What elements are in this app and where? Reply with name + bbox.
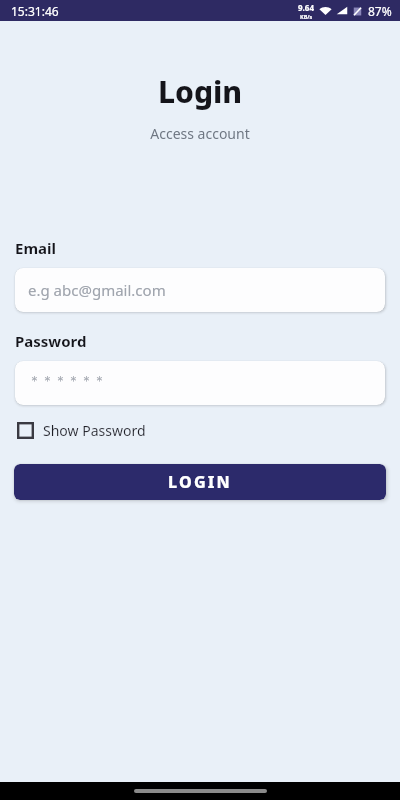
staticText: e.g abc@gmail.com	[28, 280, 166, 300]
button[interactable]: ＊＊＊＊＊＊	[15, 361, 385, 405]
staticText: Show Password	[43, 421, 146, 440]
staticText: 87%	[368, 3, 392, 19]
other: Home gesture bar	[134, 789, 267, 793]
staticText: ＊＊＊＊＊＊	[28, 372, 106, 388]
staticText: Login	[0, 71, 400, 112]
staticText: Access account	[0, 124, 400, 143]
staticText: 15:31:46	[11, 3, 59, 19]
staticText: KB/s	[300, 13, 313, 20]
button[interactable]: LOGIN	[14, 464, 386, 500]
staticText: Password	[15, 331, 87, 351]
button[interactable]: e.g abc@gmail.com	[15, 268, 385, 312]
staticText: Email	[15, 238, 56, 258]
staticText: LOGIN	[168, 471, 232, 493]
staticText: 9.64	[298, 2, 314, 13]
button[interactable]: Show Password	[15, 417, 148, 444]
